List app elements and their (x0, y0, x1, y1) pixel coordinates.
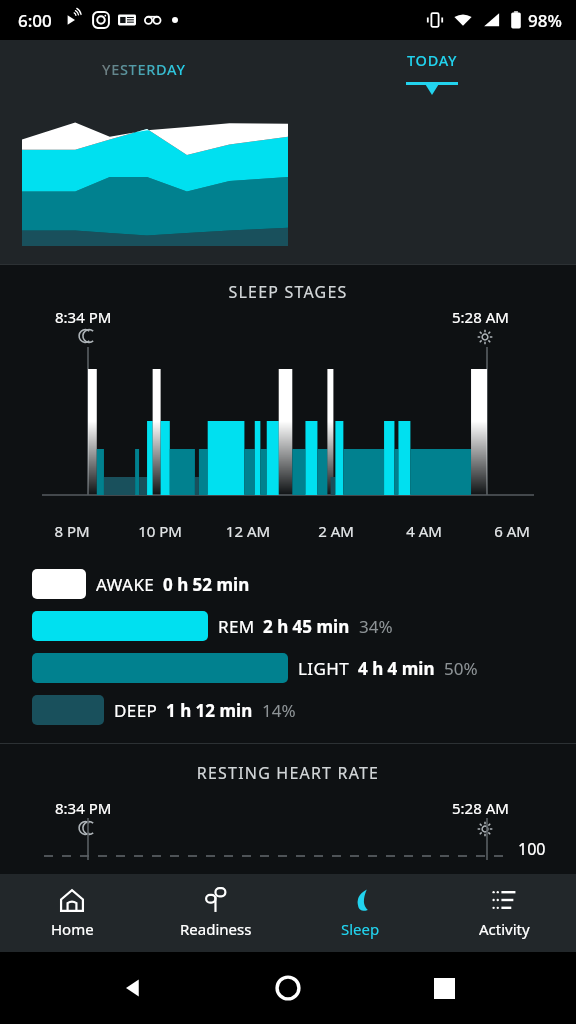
staticText: 2 AM (306, 521, 366, 541)
button[interactable]: Activity (432, 874, 576, 952)
button[interactable]: Sleep (288, 874, 432, 952)
staticText: 6:00 (18, 9, 52, 32)
staticText: Readiness (180, 919, 252, 939)
staticText: 2 h 45 min (263, 615, 350, 638)
button[interactable]: DEEP (0, 695, 576, 725)
button[interactable]: AWAKE (0, 569, 576, 599)
staticText: REM (218, 615, 255, 638)
button[interactable]: REM (0, 611, 576, 641)
staticText: Sleep (341, 919, 380, 939)
button[interactable]: Readiness (144, 874, 288, 952)
staticText: 4 AM (394, 521, 454, 541)
staticText: SLEEP STAGES (0, 281, 576, 303)
staticText: AWAKE (96, 573, 155, 596)
staticText: Activity (479, 919, 530, 939)
staticText: 14% (262, 699, 296, 722)
staticText: 8:34 PM (55, 798, 112, 818)
staticText: LIGHT (298, 657, 350, 680)
staticText: 5:28 AM (452, 798, 509, 818)
staticText: 6 AM (482, 521, 542, 541)
staticText: 8 PM (42, 521, 102, 541)
staticText: 0 h 52 min (163, 573, 250, 596)
staticText: 1 h 12 min (166, 699, 253, 722)
staticText: 8:34 PM (55, 307, 112, 327)
staticText: 50% (444, 657, 478, 680)
staticText: 98% (528, 9, 562, 32)
staticText: 34% (359, 615, 393, 638)
button[interactable]: Home (0, 874, 144, 952)
button[interactable]: Back (108, 964, 156, 1012)
staticText: 4 h 4 min (358, 657, 435, 680)
button[interactable]: Recent apps (420, 964, 468, 1012)
staticText: 10 PM (130, 521, 190, 541)
button[interactable]: Home (264, 964, 312, 1012)
button[interactable]: YESTERDAY (0, 40, 288, 98)
button[interactable]: TODAY (288, 40, 576, 98)
staticText: TODAY (407, 50, 458, 70)
staticText: 5:28 AM (452, 307, 509, 327)
staticText: 12 AM (218, 521, 278, 541)
staticText: Home (51, 919, 94, 939)
staticText: DEEP (114, 699, 158, 722)
staticText: 100 (518, 838, 546, 860)
staticText: YESTERDAY (102, 59, 186, 79)
staticText: RESTING HEART RATE (0, 762, 576, 784)
button[interactable]: LIGHT (0, 653, 576, 683)
